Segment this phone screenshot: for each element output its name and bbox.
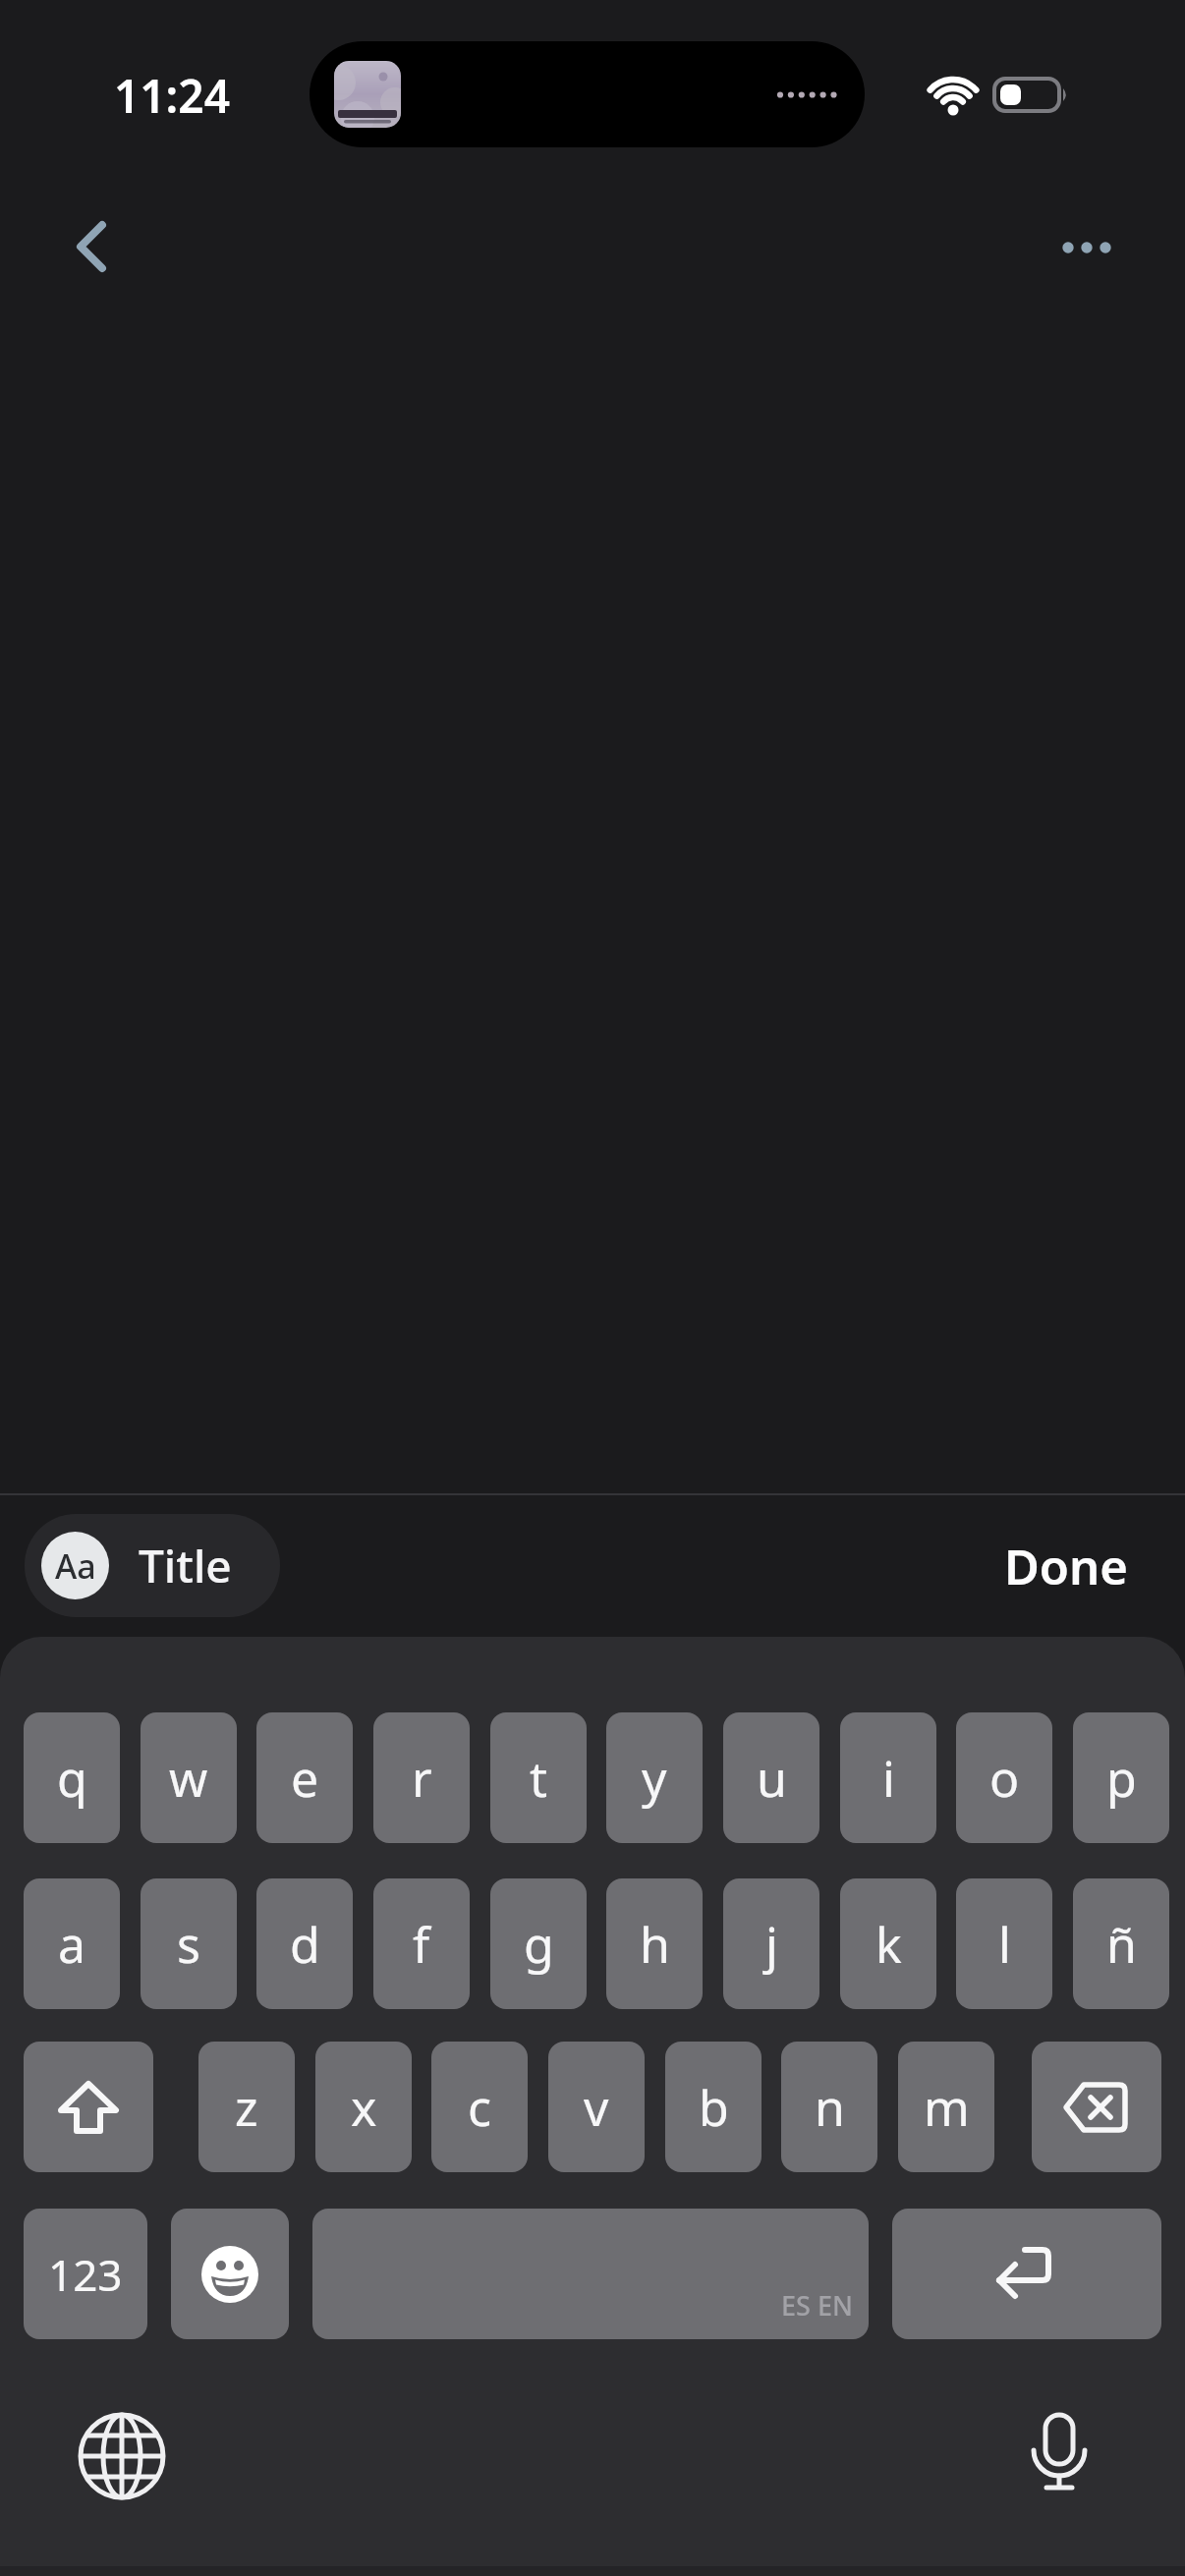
staticText: x — [351, 2074, 377, 2141]
button[interactable]: o — [956, 1712, 1052, 1843]
button[interactable]: v — [548, 2042, 645, 2172]
staticText: g — [524, 1911, 554, 1978]
button[interactable]: s — [141, 1878, 237, 2009]
button[interactable]: n — [781, 2042, 877, 2172]
button[interactable]: Done — [978, 1529, 1155, 1603]
button[interactable]: a — [24, 1878, 120, 2009]
button[interactable]: h — [606, 1878, 703, 2009]
button[interactable] — [1032, 2042, 1161, 2172]
staticText: z — [235, 2074, 258, 2141]
button[interactable]: w — [141, 1712, 237, 1843]
button[interactable]: ñ — [1073, 1878, 1169, 2009]
button[interactable]: 123 — [24, 2209, 147, 2339]
button[interactable]: l — [956, 1878, 1052, 2009]
staticText: k — [875, 1911, 902, 1978]
button[interactable] — [171, 2209, 289, 2339]
button[interactable]: r — [373, 1712, 470, 1843]
button[interactable]: z — [198, 2042, 295, 2172]
staticText: r — [412, 1745, 432, 1812]
staticText: ES EN — [781, 2287, 853, 2324]
staticText: o — [989, 1745, 1020, 1812]
staticText: Title — [139, 1535, 232, 1596]
staticText: q — [57, 1745, 87, 1812]
button[interactable]: ES EN — [312, 2209, 869, 2339]
button[interactable] — [24, 2042, 153, 2172]
button[interactable]: u — [723, 1712, 819, 1843]
staticText: y — [642, 1745, 667, 1812]
button[interactable] — [1000, 2395, 1118, 2513]
button[interactable]: y — [606, 1712, 703, 1843]
staticText: s — [177, 1911, 200, 1978]
button[interactable]: c — [431, 2042, 528, 2172]
button[interactable]: p — [1073, 1712, 1169, 1843]
button[interactable]: x — [315, 2042, 412, 2172]
button[interactable]: i — [840, 1712, 936, 1843]
staticText: 11:24 — [114, 65, 230, 126]
staticText: 123 — [48, 2245, 123, 2304]
button[interactable]: d — [256, 1878, 353, 2009]
staticText: h — [640, 1911, 670, 1978]
staticText: c — [468, 2074, 491, 2141]
button[interactable] — [63, 2397, 181, 2515]
button[interactable]: m — [898, 2042, 994, 2172]
button[interactable] — [892, 2209, 1161, 2339]
button[interactable] — [1038, 208, 1136, 287]
button[interactable] — [47, 202, 136, 291]
staticText: t — [530, 1745, 548, 1812]
staticText: n — [815, 2074, 845, 2141]
button[interactable]: b — [665, 2042, 762, 2172]
staticText: f — [413, 1911, 430, 1978]
button[interactable]: q — [24, 1712, 120, 1843]
staticText: Aa — [55, 1543, 96, 1589]
staticText: a — [58, 1911, 86, 1978]
button[interactable]: t — [490, 1712, 587, 1843]
staticText: d — [290, 1911, 320, 1978]
button[interactable]: e — [256, 1712, 353, 1843]
staticText: v — [584, 2074, 609, 2141]
button[interactable]: Aa — [25, 1514, 280, 1617]
staticText: b — [699, 2074, 729, 2141]
button[interactable]: g — [490, 1878, 587, 2009]
staticText: m — [924, 2074, 970, 2141]
staticText: l — [998, 1911, 1011, 1978]
button[interactable]: f — [373, 1878, 470, 2009]
staticText: u — [757, 1745, 787, 1812]
staticText: j — [765, 1911, 778, 1978]
staticText: p — [1106, 1745, 1137, 1812]
staticText: w — [169, 1745, 208, 1812]
button[interactable]: k — [840, 1878, 936, 2009]
staticText: ñ — [1106, 1911, 1137, 1978]
staticText: Done — [1004, 1534, 1129, 1599]
staticText: i — [882, 1745, 895, 1812]
button[interactable]: j — [723, 1878, 819, 2009]
staticText: e — [291, 1745, 319, 1812]
